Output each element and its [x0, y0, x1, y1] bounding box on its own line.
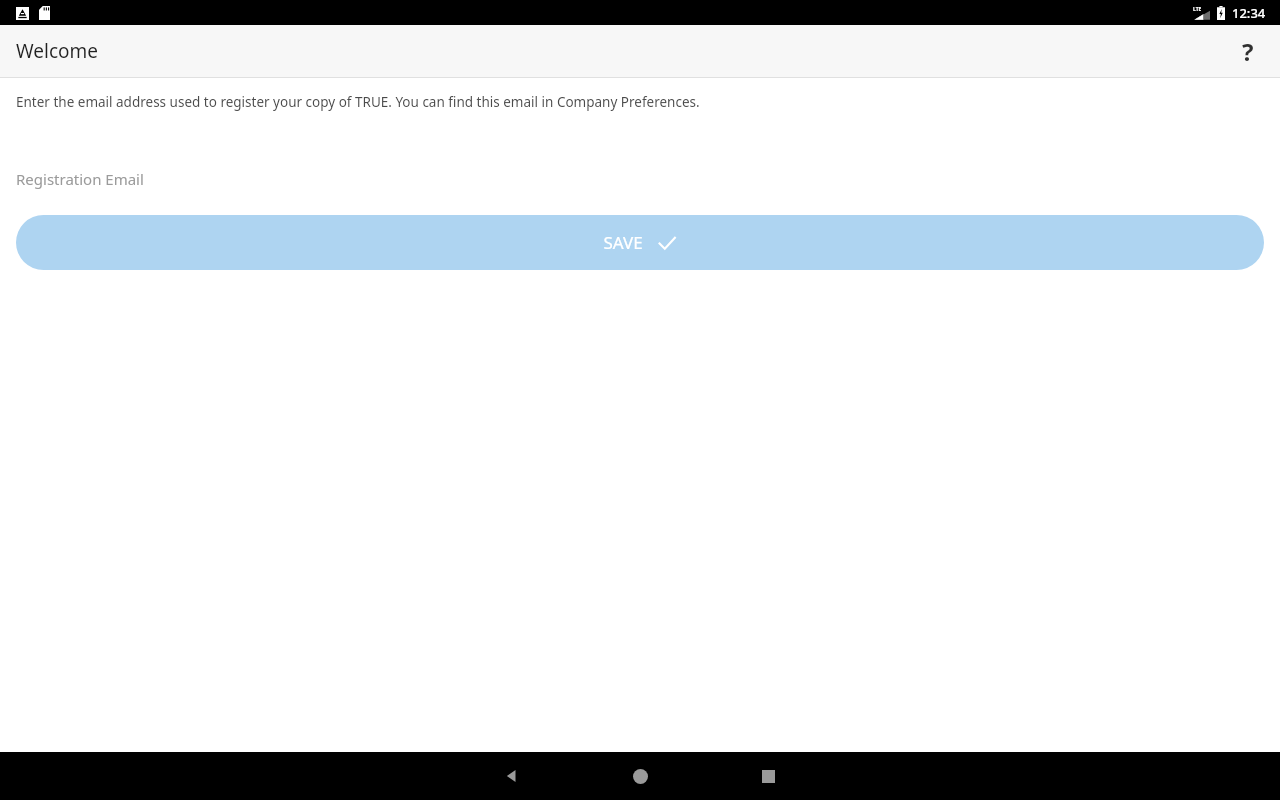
button[interactable]: Recent apps	[704, 752, 832, 800]
staticText: SAVE	[603, 231, 643, 254]
staticText: LTE	[1193, 6, 1202, 13]
staticText: ?	[1242, 35, 1254, 68]
staticText: Enter the email address used to register…	[16, 93, 700, 111]
staticText: 12:34	[1232, 4, 1266, 22]
staticText: Registration Email	[16, 169, 144, 189]
button[interactable]: SAVE	[16, 215, 1264, 270]
button[interactable]: Help	[1226, 29, 1270, 73]
button[interactable]: Home	[576, 752, 704, 800]
button[interactable]: Registration Email	[0, 161, 1280, 197]
button[interactable]: Back	[448, 752, 576, 800]
staticText: Welcome	[16, 38, 99, 64]
